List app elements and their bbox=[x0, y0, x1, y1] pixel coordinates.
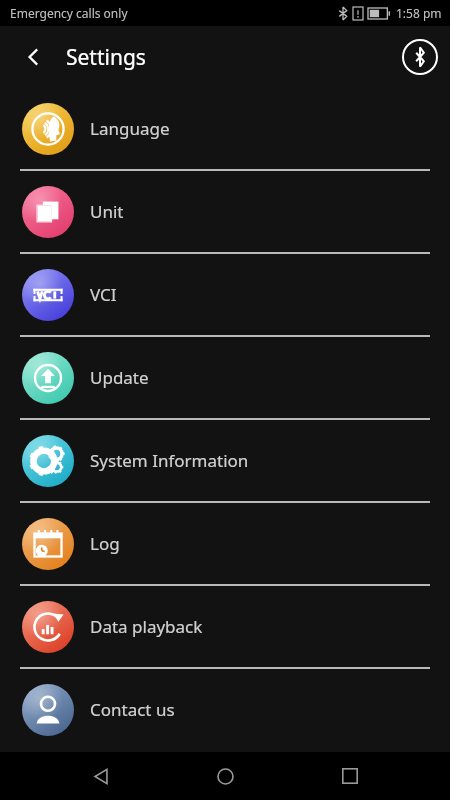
button[interactable]: Recent apps bbox=[326, 752, 374, 800]
staticText: Update bbox=[90, 366, 149, 389]
button[interactable]: Back bbox=[14, 37, 54, 77]
staticText: Contact us bbox=[90, 698, 175, 721]
staticText: Log bbox=[90, 532, 120, 555]
staticText: Emergency calls only bbox=[10, 5, 128, 21]
button[interactable]: Update bbox=[0, 337, 450, 418]
button[interactable]: Home bbox=[201, 752, 249, 800]
button[interactable]: Data playback bbox=[0, 586, 450, 667]
button[interactable]: Unit bbox=[0, 171, 450, 252]
staticText: Language bbox=[90, 117, 170, 140]
button[interactable]: Bluetooth bbox=[398, 35, 442, 79]
staticText: System Information bbox=[90, 449, 249, 472]
staticText: Unit bbox=[90, 200, 124, 223]
button[interactable]: Contact us bbox=[0, 669, 450, 750]
staticText: Settings bbox=[66, 43, 146, 72]
button[interactable]: Log bbox=[0, 503, 450, 584]
staticText: Data playback bbox=[90, 615, 203, 638]
button[interactable]: Back bbox=[77, 752, 125, 800]
button[interactable]: System Information bbox=[0, 420, 450, 501]
staticText: 1:58 pm bbox=[396, 5, 442, 21]
button[interactable]: Language bbox=[0, 88, 450, 169]
staticText: VCI bbox=[90, 283, 117, 306]
button[interactable]: VCI bbox=[0, 254, 450, 335]
